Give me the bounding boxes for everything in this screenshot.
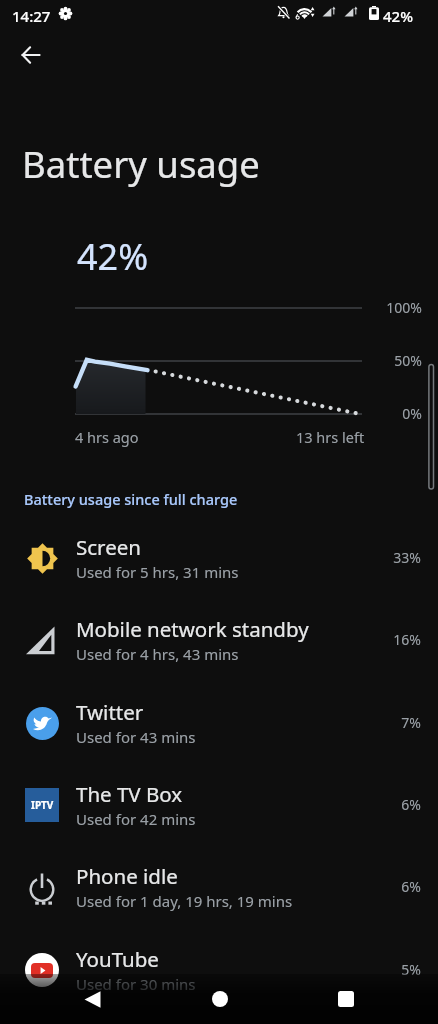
staticText: Used for 42 mins bbox=[76, 809, 196, 829]
staticText: Used for 43 mins bbox=[76, 727, 196, 747]
staticText: Screen bbox=[76, 533, 141, 561]
button[interactable]: Screen bbox=[0, 521, 438, 603]
staticText: 100% bbox=[360, 298, 422, 317]
button[interactable]: YouTube bbox=[0, 933, 438, 1015]
staticText: Phone idle bbox=[76, 862, 178, 890]
staticText: 7% bbox=[378, 713, 421, 732]
staticText: IPTV bbox=[31, 798, 54, 812]
staticText: The TV Box bbox=[76, 780, 183, 808]
staticText: 13 hrs left bbox=[296, 427, 365, 447]
staticText: 14:27 bbox=[12, 6, 51, 26]
button[interactable]: Recent apps bbox=[322, 975, 370, 1023]
staticText: 6% bbox=[378, 795, 421, 814]
staticText: 5% bbox=[378, 960, 421, 979]
button[interactable]: Home bbox=[196, 975, 244, 1023]
staticText: 4 hrs ago bbox=[75, 427, 139, 447]
staticText: 33% bbox=[378, 548, 421, 567]
button[interactable]: Mobile network standby bbox=[0, 603, 438, 685]
staticText: YouTube bbox=[76, 945, 159, 973]
staticText: 16% bbox=[378, 630, 421, 649]
staticText: 6% bbox=[378, 877, 421, 896]
staticText: Used for 1 day, 19 hrs, 19 mins bbox=[76, 891, 293, 911]
staticText: Used for 4 hrs, 43 mins bbox=[76, 644, 239, 664]
button[interactable]: Twitter bbox=[0, 686, 438, 768]
staticText: Used for 5 hrs, 31 mins bbox=[76, 562, 239, 582]
staticText: 50% bbox=[360, 351, 422, 370]
staticText: 42% bbox=[77, 232, 149, 281]
staticText: Used for 30 mins bbox=[76, 974, 196, 994]
staticText: Battery usage bbox=[22, 139, 260, 189]
button[interactable]: Back bbox=[68, 975, 116, 1023]
staticText: 42% bbox=[383, 6, 413, 26]
staticText: Mobile network standby bbox=[76, 615, 309, 643]
button[interactable]: Back bbox=[7, 31, 55, 79]
button[interactable]: Phone idle bbox=[0, 850, 438, 932]
staticText: 0% bbox=[360, 404, 422, 423]
button[interactable]: IPTV bbox=[0, 768, 438, 850]
staticText: Battery usage since full charge bbox=[24, 489, 238, 509]
staticText: Twitter bbox=[76, 698, 144, 726]
